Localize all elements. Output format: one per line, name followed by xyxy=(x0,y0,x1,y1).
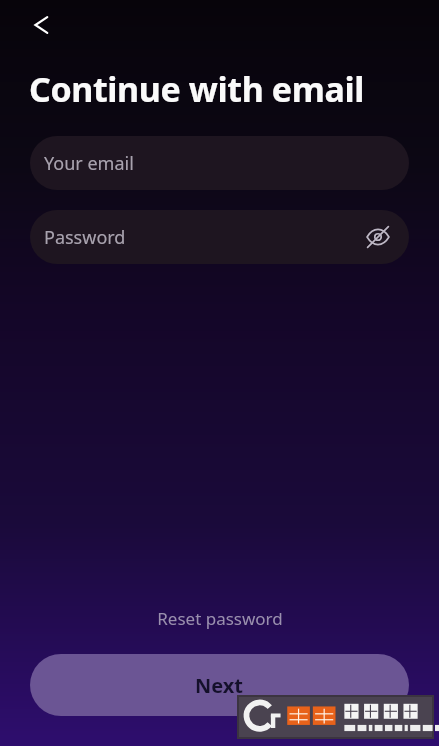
button[interactable]: Password xyxy=(30,210,409,264)
button[interactable]: Show password xyxy=(361,220,395,254)
button[interactable]: Reset password xyxy=(143,602,297,635)
button[interactable]: Your email xyxy=(30,136,409,190)
button[interactable]: Next xyxy=(30,654,409,716)
staticText: Password xyxy=(44,225,126,250)
staticText: Reset password xyxy=(157,607,283,630)
staticText: Next xyxy=(195,672,244,699)
staticText: Your email xyxy=(44,151,134,176)
staticText: Continue with email xyxy=(29,66,364,112)
button[interactable]: Back xyxy=(18,4,60,46)
